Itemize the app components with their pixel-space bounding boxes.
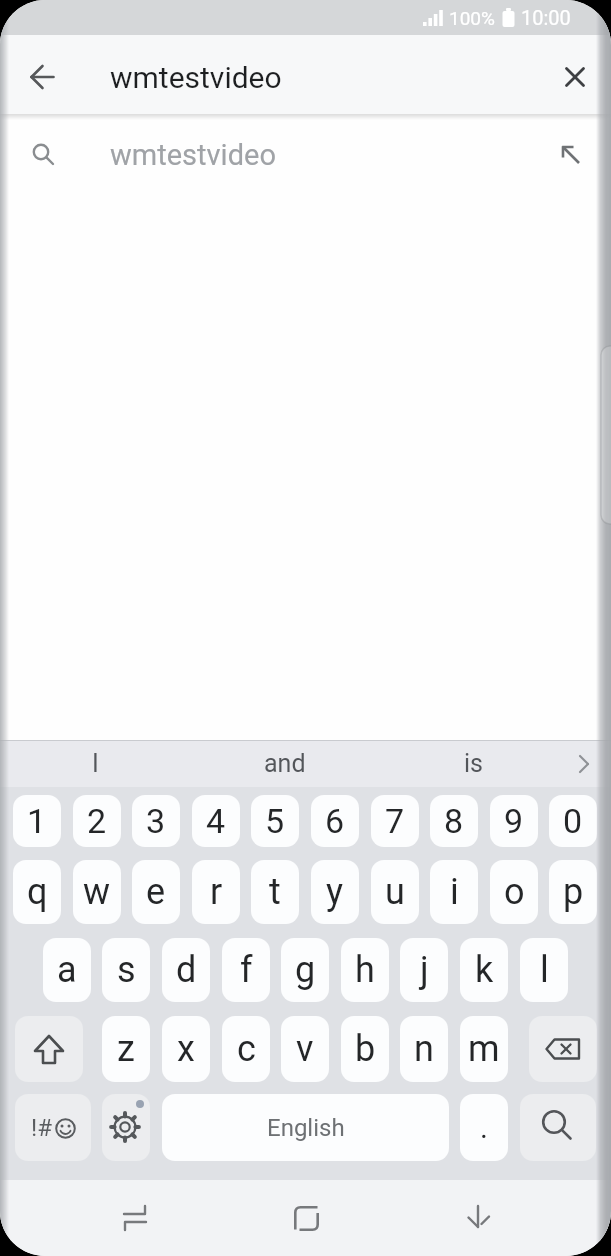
staticText: n	[414, 1028, 434, 1070]
button[interactable]: q	[13, 860, 61, 924]
staticText: c	[237, 1028, 256, 1070]
staticText: 10:00	[521, 6, 571, 29]
staticText: e	[146, 871, 166, 913]
button[interactable]	[15, 1016, 83, 1082]
staticText: k	[475, 949, 494, 991]
staticText: is	[464, 749, 483, 778]
button[interactable]: o	[490, 860, 538, 924]
button[interactable]: is	[413, 740, 533, 787]
button[interactable]	[520, 1094, 596, 1161]
button[interactable]: s	[102, 938, 150, 1002]
button[interactable]: 7	[371, 795, 419, 847]
button[interactable]: r	[192, 860, 240, 924]
staticText: o	[504, 871, 525, 913]
button[interactable]: 0	[549, 795, 597, 847]
button[interactable]: l	[520, 938, 568, 1002]
button[interactable]: 8	[430, 795, 478, 847]
button[interactable]: 9	[490, 795, 538, 847]
staticText: 4	[206, 801, 226, 841]
button[interactable]: h	[341, 938, 389, 1002]
staticText: wmtestvideo	[110, 60, 282, 95]
staticText: x	[177, 1028, 195, 1070]
button[interactable]: d	[162, 938, 210, 1002]
staticText: p	[563, 871, 584, 913]
staticText: 5	[265, 801, 285, 841]
button[interactable]: e	[132, 860, 180, 924]
staticText: 1	[27, 801, 47, 841]
staticText: j	[420, 949, 429, 991]
staticText: w	[83, 871, 111, 913]
button[interactable]: .	[460, 1094, 508, 1161]
staticText: h	[355, 949, 375, 991]
staticText: q	[27, 871, 48, 913]
staticText: 100%	[449, 7, 495, 29]
staticText: 3	[146, 801, 166, 841]
staticText: 2	[87, 801, 107, 841]
button[interactable]: m	[460, 1016, 508, 1082]
staticText: 9	[504, 801, 524, 841]
staticText: g	[295, 949, 316, 991]
staticText: 8	[444, 801, 464, 841]
button[interactable]: z	[102, 1016, 150, 1082]
staticText: and	[264, 749, 306, 778]
button[interactable]: b	[341, 1016, 389, 1082]
staticText: r	[210, 871, 223, 913]
button[interactable]	[99, 1182, 171, 1254]
button[interactable]	[18, 53, 66, 101]
button[interactable]: w	[73, 860, 121, 924]
button[interactable]: j	[400, 938, 448, 1002]
staticText: u	[385, 871, 405, 913]
staticText: I	[92, 749, 99, 778]
button[interactable]: !#	[15, 1094, 91, 1161]
button[interactable]: u	[371, 860, 419, 924]
staticText: i	[450, 871, 459, 913]
staticText: d	[176, 949, 197, 991]
staticText: b	[355, 1028, 376, 1070]
button[interactable]	[270, 1182, 342, 1254]
button[interactable]: x	[162, 1016, 210, 1082]
staticText: .	[480, 1110, 488, 1145]
staticText: 0	[563, 801, 583, 841]
button[interactable]: i	[430, 860, 478, 924]
button[interactable]: 4	[192, 795, 240, 847]
button[interactable]: t	[251, 860, 299, 924]
button[interactable]: wmtestvideo	[0, 114, 611, 196]
button[interactable]: p	[549, 860, 597, 924]
staticText: wmtestvideo	[110, 138, 276, 172]
button[interactable]: 5	[251, 795, 299, 847]
button[interactable]: v	[281, 1016, 329, 1082]
button[interactable]: 2	[73, 795, 121, 847]
staticText: 7	[385, 801, 405, 841]
button[interactable]: a	[43, 938, 91, 1002]
button[interactable]: English	[162, 1094, 449, 1161]
button[interactable]	[551, 135, 591, 175]
button[interactable]	[566, 740, 602, 787]
button[interactable]: n	[400, 1016, 448, 1082]
button[interactable]	[551, 53, 599, 101]
button[interactable]	[529, 1016, 597, 1082]
button[interactable]	[102, 1094, 150, 1161]
staticText: 6	[325, 801, 345, 841]
staticText: v	[296, 1028, 314, 1070]
staticText: t	[269, 871, 281, 913]
button[interactable]: c	[222, 1016, 270, 1082]
staticText: English	[267, 1114, 345, 1142]
button[interactable]: 3	[132, 795, 180, 847]
button[interactable]: 6	[311, 795, 359, 847]
staticText: m	[468, 1028, 500, 1070]
button[interactable]: f	[222, 938, 270, 1002]
staticText: l	[540, 949, 549, 991]
staticText: y	[326, 871, 344, 913]
staticText: !#	[31, 1114, 52, 1142]
button[interactable]: g	[281, 938, 329, 1002]
button[interactable]: I	[35, 740, 155, 787]
staticText: f	[240, 949, 253, 991]
staticText: z	[117, 1028, 135, 1070]
button[interactable]	[442, 1182, 514, 1254]
button[interactable]: y	[311, 860, 359, 924]
button[interactable]: k	[460, 938, 508, 1002]
staticText: a	[57, 949, 77, 991]
button[interactable]: 1	[13, 795, 61, 847]
staticText: s	[117, 949, 136, 991]
button[interactable]: and	[225, 740, 345, 787]
